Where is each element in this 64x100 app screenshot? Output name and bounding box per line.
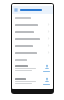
other: Contact bbox=[44, 64, 50, 70]
other: Menu bbox=[14, 8, 18, 12]
button[interactable] bbox=[12, 28, 53, 35]
button[interactable]: Contact bbox=[12, 75, 53, 87]
button[interactable] bbox=[12, 49, 53, 56]
button[interactable] bbox=[12, 35, 53, 42]
button[interactable]: Contact bbox=[12, 62, 53, 74]
other: Contact bbox=[44, 77, 50, 83]
button[interactable] bbox=[12, 21, 53, 28]
button[interactable]: Menu bbox=[12, 6, 53, 14]
button[interactable] bbox=[12, 42, 53, 49]
